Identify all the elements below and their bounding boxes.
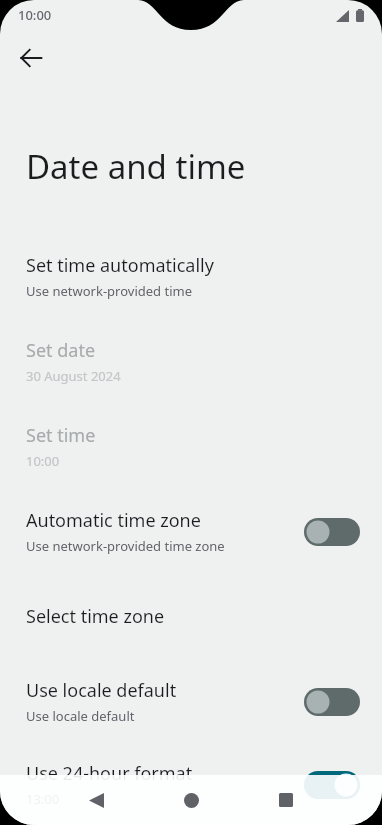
staticText: Use network-provided time — [26, 282, 192, 300]
button[interactable]: Recent apps — [262, 776, 310, 824]
button[interactable]: Toggle off — [304, 688, 360, 716]
staticText: 10:00 — [18, 6, 52, 24]
button[interactable]: Select time zone — [0, 574, 382, 659]
staticText: Select time zone — [26, 604, 165, 629]
staticText: Set time — [26, 423, 96, 448]
button[interactable]: Use locale default — [0, 659, 382, 744]
button[interactable]: Toggle off — [304, 518, 360, 546]
staticText: Automatic time zone — [26, 508, 201, 533]
button[interactable]: Use 24-hour format — [0, 744, 382, 825]
button[interactable]: Toggle on — [304, 771, 360, 799]
button[interactable]: Home — [167, 776, 215, 824]
staticText: Date and time — [26, 144, 246, 189]
staticText: Use locale default — [26, 678, 177, 703]
button[interactable]: Set time automatically — [0, 234, 382, 319]
button[interactable]: Back — [3, 30, 59, 86]
button[interactable]: Back — [72, 776, 120, 824]
button[interactable]: Set time — [0, 404, 382, 489]
staticText: Set date — [26, 338, 96, 363]
staticText: Set time automatically — [26, 253, 214, 278]
staticText: 10:00 — [26, 452, 60, 470]
staticText: 30 August 2024 — [26, 367, 121, 385]
staticText: Use locale default — [26, 707, 135, 725]
staticText: Use network-provided time zone — [26, 537, 225, 555]
staticText: Use 24-hour format — [26, 761, 193, 786]
button[interactable]: Automatic time zone — [0, 489, 382, 574]
button[interactable]: Set date — [0, 319, 382, 404]
staticText: 13:00 — [26, 790, 60, 808]
